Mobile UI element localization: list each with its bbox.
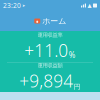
staticText: 23:20 (3, 1, 21, 10)
staticText: 運用収益額 (37, 62, 62, 69)
staticText: +11.0 (24, 39, 68, 62)
staticText: 運用収益率 (37, 32, 62, 38)
staticText: ➤ (22, 3, 25, 8)
staticText: ▲ (87, 2, 91, 9)
staticText: % (69, 50, 76, 60)
staticText: +9,894 (19, 69, 73, 92)
staticText: ホーム (42, 16, 66, 26)
staticText: 円 (74, 83, 81, 91)
